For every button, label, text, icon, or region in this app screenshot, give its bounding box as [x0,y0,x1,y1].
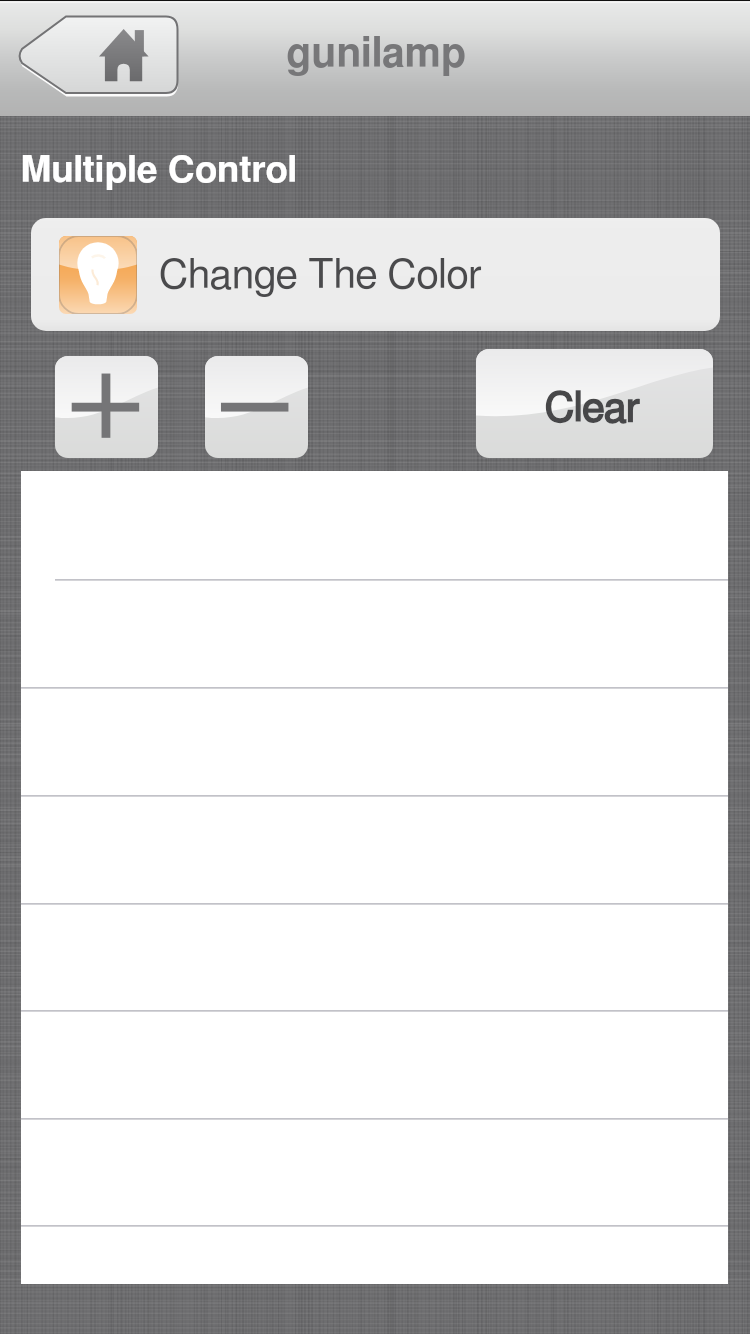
button[interactable]: Decrease [205,356,308,458]
staticText: Clear [545,388,640,429]
button[interactable]: Increase [55,356,158,458]
staticText: Multiple Control [20,152,298,189]
staticText: Change The Color [159,255,482,296]
button[interactable]: Change The Color [31,218,720,331]
staticText: Clear [545,388,640,429]
button[interactable]: Clear [476,349,713,458]
staticText: gunilamp [286,34,467,75]
button[interactable]: Home [16,15,179,97]
